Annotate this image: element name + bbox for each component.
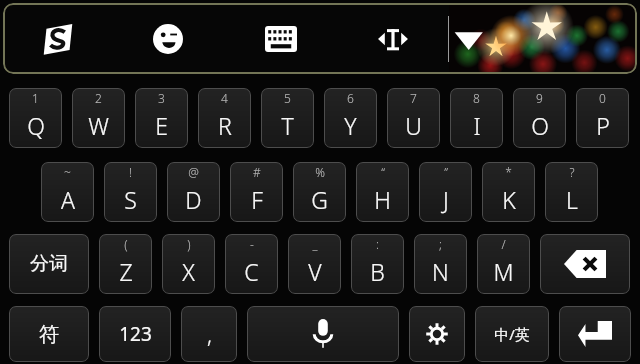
button[interactable]: ” [419, 162, 472, 222]
button[interactable]: - [225, 234, 278, 294]
staticText: W [88, 110, 109, 141]
staticText: 6 [347, 90, 354, 106]
staticText: U [405, 110, 422, 141]
button[interactable]: 1 [9, 88, 62, 148]
staticText: , [207, 319, 212, 349]
staticText: 符 [39, 322, 59, 347]
staticText: L [566, 184, 578, 215]
button[interactable]: 8 [450, 88, 503, 148]
staticText: 3 [158, 90, 165, 106]
staticText: * [505, 164, 512, 180]
button[interactable]: 分词 [9, 234, 89, 294]
button[interactable]: % [293, 162, 346, 222]
button[interactable]: 5 [261, 88, 314, 148]
staticText: 9 [536, 90, 543, 106]
button[interactable]: ; [414, 234, 467, 294]
button[interactable]: # [230, 162, 283, 222]
button[interactable]: 4 [198, 88, 251, 148]
staticText: 0 [599, 90, 606, 106]
staticText: - [250, 236, 254, 252]
button[interactable]: More options [449, 3, 637, 74]
staticText: 4 [221, 90, 228, 106]
staticText: @ [188, 164, 199, 180]
button[interactable]: Keyboard layout [223, 3, 338, 74]
staticText: F [251, 184, 263, 215]
staticText: S [124, 184, 137, 215]
staticText: Q [27, 110, 45, 141]
staticText: H [374, 184, 391, 215]
staticText: 中/英 [494, 324, 530, 344]
staticText: I [473, 110, 481, 141]
button[interactable]: Settings [409, 306, 465, 362]
staticText: ) [187, 236, 191, 252]
staticText: B [370, 256, 385, 287]
button[interactable]: 123 [99, 306, 171, 362]
button[interactable]: : [351, 234, 404, 294]
staticText: : [376, 236, 379, 252]
button[interactable]: 7 [387, 88, 440, 148]
staticText: “ [381, 164, 385, 180]
button[interactable]: ! [104, 162, 157, 222]
staticText: N [432, 256, 449, 287]
staticText: 123 [119, 321, 152, 347]
button[interactable]: 9 [513, 88, 566, 148]
staticText: Z [119, 256, 133, 287]
staticText: D [185, 184, 202, 215]
button[interactable]: 6 [324, 88, 377, 148]
staticText: # [253, 164, 261, 180]
staticText: ” [444, 164, 448, 180]
button[interactable]: 2 [72, 88, 125, 148]
staticText: V [308, 256, 322, 287]
staticText: 分词 [30, 252, 68, 276]
staticText: E [155, 110, 168, 141]
button[interactable]: ) [162, 234, 215, 294]
button[interactable]: _ [288, 234, 341, 294]
button[interactable]: ( [99, 234, 152, 294]
staticText: G [311, 184, 328, 215]
button[interactable]: Move cursor [338, 3, 448, 74]
staticText: Y [344, 110, 357, 141]
button[interactable]: 符 [9, 306, 89, 362]
staticText: _ [312, 236, 318, 252]
staticText: J [443, 184, 449, 215]
staticText: ( [124, 236, 128, 252]
staticText: M [493, 256, 514, 287]
button[interactable]: , [181, 306, 237, 362]
staticText: ; [439, 236, 442, 252]
button[interactable]: ~ [41, 162, 94, 222]
button[interactable]: 中/英 [475, 306, 549, 362]
staticText: ! [129, 164, 132, 180]
button[interactable]: Voice input [247, 306, 399, 362]
button[interactable]: “ [356, 162, 409, 222]
button[interactable]: Emoji [113, 3, 223, 74]
staticText: A [61, 184, 75, 215]
staticText: T [281, 110, 294, 141]
staticText: % [315, 164, 325, 180]
button[interactable]: @ [167, 162, 220, 222]
staticText: ? [569, 164, 575, 180]
staticText: C [244, 256, 259, 287]
button[interactable]: 0 [576, 88, 629, 148]
staticText: P [596, 110, 610, 141]
staticText: 1 [32, 90, 39, 106]
staticText: 2 [95, 90, 102, 106]
button[interactable]: Enter [559, 306, 631, 362]
staticText: 7 [410, 90, 417, 106]
staticText: 5 [284, 90, 291, 106]
button[interactable]: Backspace [540, 234, 630, 294]
staticText: K [502, 184, 516, 215]
button[interactable]: * [482, 162, 535, 222]
button[interactable]: / [477, 234, 530, 294]
staticText: ~ [64, 164, 71, 180]
staticText: 8 [473, 90, 480, 106]
staticText: R [218, 110, 232, 141]
staticText: / [501, 236, 506, 252]
button[interactable]: 3 [135, 88, 188, 148]
button[interactable]: ? [545, 162, 598, 222]
staticText: O [531, 110, 549, 141]
staticText: X [182, 256, 195, 287]
button[interactable]: Sogou input [3, 3, 113, 74]
